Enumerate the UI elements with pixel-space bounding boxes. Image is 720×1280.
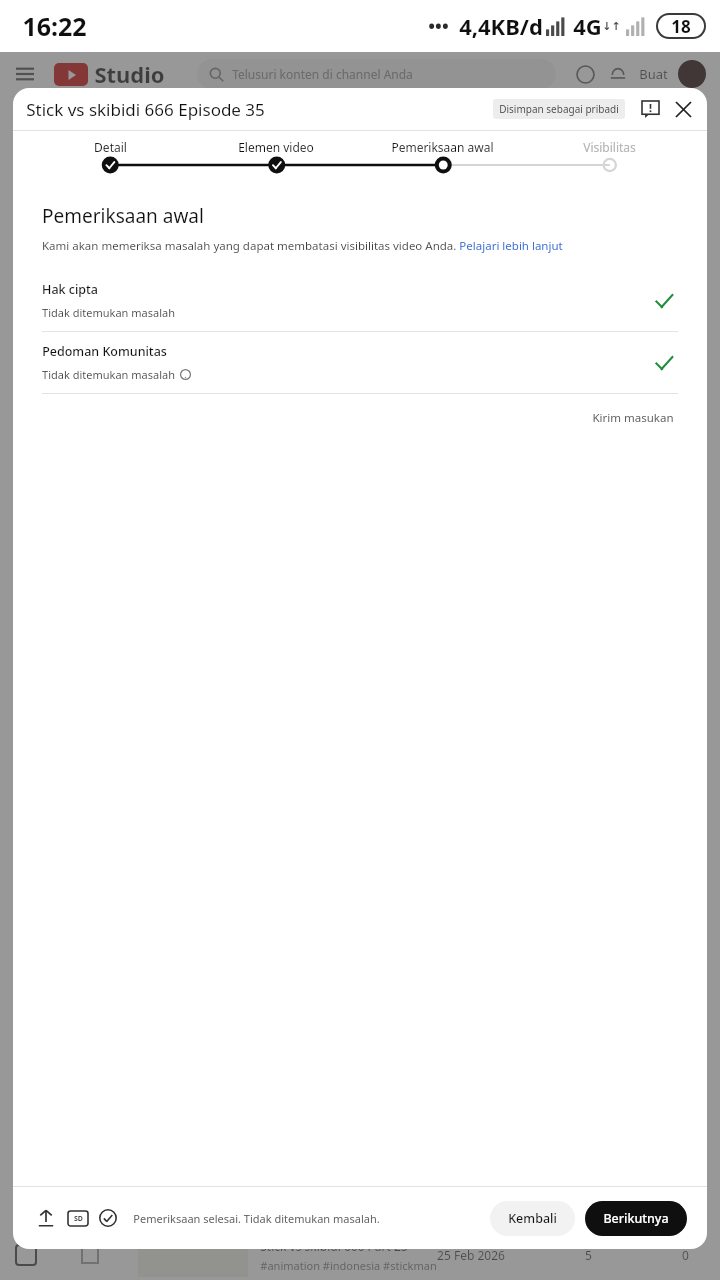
staticText: Kami akan memeriksa masalah yang dapat m… [42, 238, 563, 254]
button[interactable]: Berikutnya [585, 1201, 687, 1236]
button[interactable]: Elemen video [193, 131, 359, 187]
staticText: Telusuri konten di channel Anda [232, 66, 413, 82]
staticText: #animation #indonesia #stickman [260, 1258, 437, 1273]
staticText: Visibilitas [583, 139, 636, 155]
button[interactable]: Hak cipta [42, 270, 678, 331]
staticText: Pemeriksaan awal [391, 139, 494, 155]
button[interactable]: Pedoman Komunitas [42, 332, 678, 393]
staticText: Pedoman Komunitas [42, 343, 167, 360]
staticText: Berikutnya [603, 1210, 669, 1227]
staticText: Kembali [508, 1210, 557, 1227]
button[interactable]: Detail [27, 131, 193, 187]
staticText: Pemeriksaan selesai. Tidak ditemukan mas… [133, 1211, 380, 1226]
staticText: 4G [573, 11, 602, 41]
staticText: Disimpan sebagai pribadi [499, 102, 619, 116]
staticText: Elemen video [238, 139, 314, 155]
staticText: 16:22 [22, 9, 87, 43]
staticText: 5 [585, 1247, 592, 1263]
staticText: Studio [94, 59, 165, 89]
staticText: Tidak ditemukan masalah [42, 367, 175, 382]
button[interactable]: Kembali [490, 1201, 575, 1236]
staticText: ↓↑ [602, 20, 621, 33]
staticText: Hak cipta [42, 281, 98, 298]
staticText: 0 [682, 1247, 689, 1263]
button[interactable]: Kualitas SD [68, 1211, 88, 1226]
staticText: Stick vs skibidi 666 Part 23 [260, 1238, 408, 1254]
staticText: SD [74, 1214, 83, 1224]
button[interactable]: Disimpan sebagai pribadi [493, 99, 625, 119]
staticText: Stick vs skibidi 666 Episode 35 [26, 98, 265, 121]
button[interactable]: Tutup [669, 95, 697, 123]
staticText: 4,4KB/d [459, 11, 543, 41]
staticText: ••• [428, 14, 449, 39]
staticText: Buat [639, 65, 668, 83]
button[interactable]: Visibilitas [526, 131, 693, 187]
button[interactable]: Kirim masukan [637, 96, 663, 122]
staticText: Kirim masukan [592, 410, 674, 426]
button[interactable]: Kirim masukan [588, 406, 678, 430]
staticText: 18 [671, 15, 691, 37]
staticText: Tidak ditemukan masalah [42, 305, 175, 320]
staticText: 25 Feb 2026 [437, 1247, 505, 1263]
staticText: Detail [94, 139, 127, 155]
button[interactable]: Selesai [97, 1207, 119, 1229]
button[interactable]: Pemeriksaan awal [359, 131, 526, 187]
button[interactable]: Upload [33, 1205, 59, 1231]
staticText: Pemeriksaan awal [42, 203, 204, 229]
